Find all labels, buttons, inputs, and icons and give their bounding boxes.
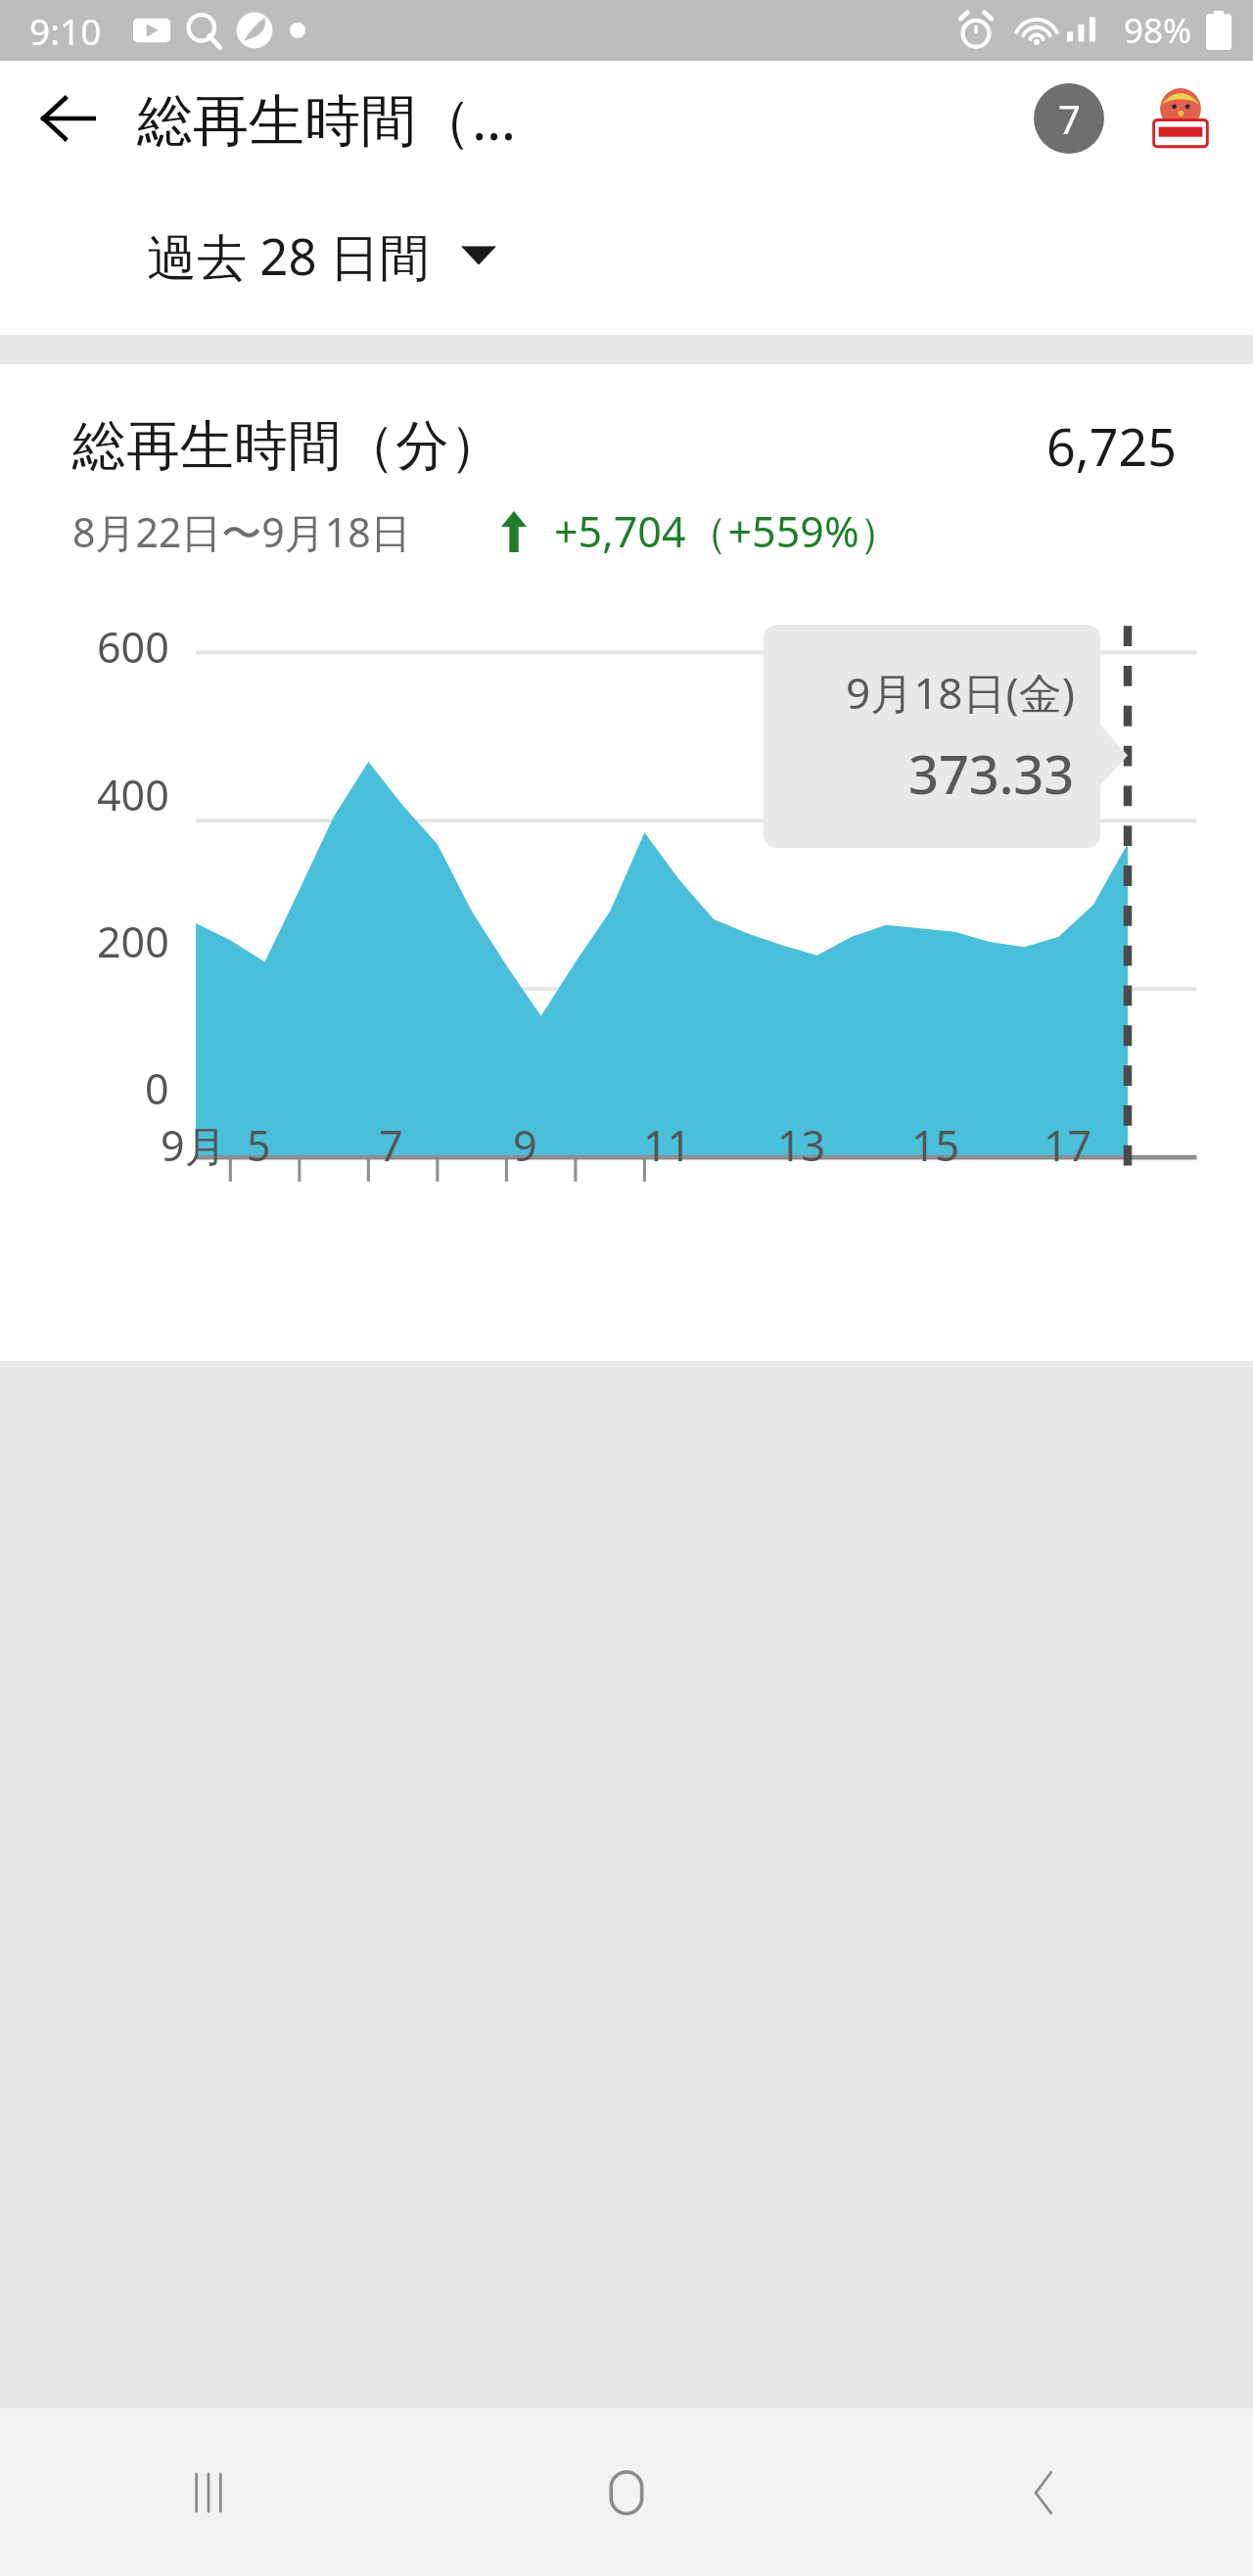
button[interactable]: 過去 28 日間 bbox=[0, 176, 1253, 335]
staticText: 8月22日〜9月18日 bbox=[72, 504, 411, 559]
staticText: 9月 bbox=[161, 1116, 227, 1174]
staticText: 過去 28 日間 bbox=[147, 221, 430, 290]
staticText: 15 bbox=[911, 1116, 960, 1174]
staticText: 6,725 bbox=[1046, 411, 1177, 481]
button[interactable]: Recents bbox=[0, 2409, 417, 2576]
button[interactable]: Back bbox=[20, 70, 117, 167]
staticText: 600 bbox=[97, 618, 169, 676]
button[interactable]: Home bbox=[417, 2409, 835, 2576]
staticText: 11 bbox=[643, 1116, 692, 1174]
staticText: 0 bbox=[145, 1059, 169, 1117]
staticText: 98% bbox=[1124, 7, 1192, 54]
staticText: 7 bbox=[1058, 92, 1081, 145]
staticText: 総再生時間（分） bbox=[72, 412, 503, 480]
staticText: 373.33 bbox=[908, 737, 1075, 810]
staticText: 7 bbox=[379, 1116, 403, 1174]
staticText: 9月18日(金) bbox=[846, 663, 1075, 722]
staticText: +5,704（+559%） bbox=[554, 502, 902, 560]
staticText: 5 bbox=[247, 1116, 271, 1174]
staticText: 9:10 bbox=[29, 6, 102, 55]
button[interactable]: Account bbox=[1136, 73, 1226, 164]
button[interactable]: Back bbox=[835, 2409, 1253, 2576]
staticText: 13 bbox=[777, 1116, 826, 1174]
staticText: 200 bbox=[97, 913, 169, 970]
staticText: 総再生時間（… bbox=[137, 80, 517, 157]
staticText: 400 bbox=[97, 766, 169, 823]
staticText: 17 bbox=[1044, 1116, 1092, 1174]
button[interactable]: Notifications, 7 new bbox=[1024, 73, 1114, 164]
staticText: 9 bbox=[513, 1116, 537, 1174]
